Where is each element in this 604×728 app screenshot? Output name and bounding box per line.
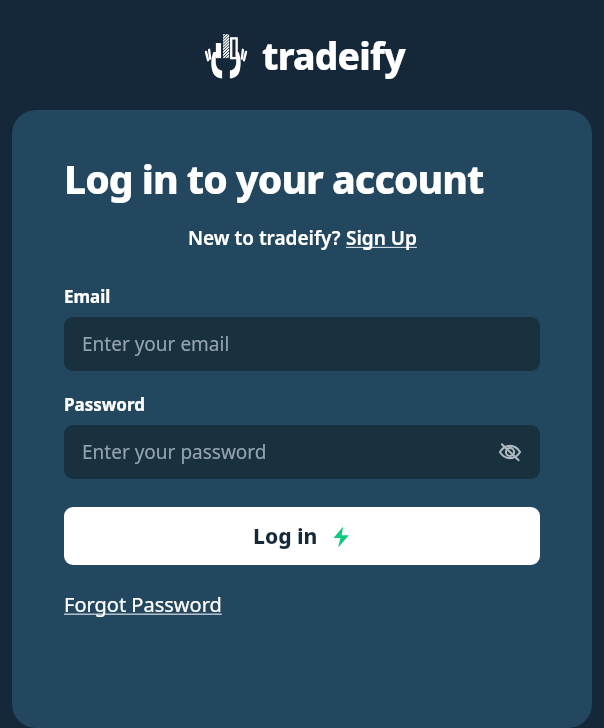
button[interactable]: Sign Up xyxy=(346,225,417,251)
staticText: Sign Up xyxy=(346,225,417,251)
staticText: Forgot Password xyxy=(64,591,222,618)
staticText: Enter your email xyxy=(82,331,230,357)
button[interactable]: Forgot Password xyxy=(64,591,222,618)
button[interactable]: Enter your email xyxy=(64,317,540,371)
staticText: New to tradeify? xyxy=(188,225,346,251)
staticText: Log in xyxy=(253,522,318,551)
staticText: Password xyxy=(64,393,145,416)
button[interactable]: Enter your password xyxy=(64,425,540,479)
staticText: Enter your password xyxy=(82,439,267,465)
button[interactable]: Show password xyxy=(490,432,530,472)
staticText: Log in to your account xyxy=(64,152,484,205)
staticText: Email xyxy=(64,285,111,308)
staticText: tradeify xyxy=(262,30,405,80)
button[interactable]: Log in xyxy=(64,507,540,565)
